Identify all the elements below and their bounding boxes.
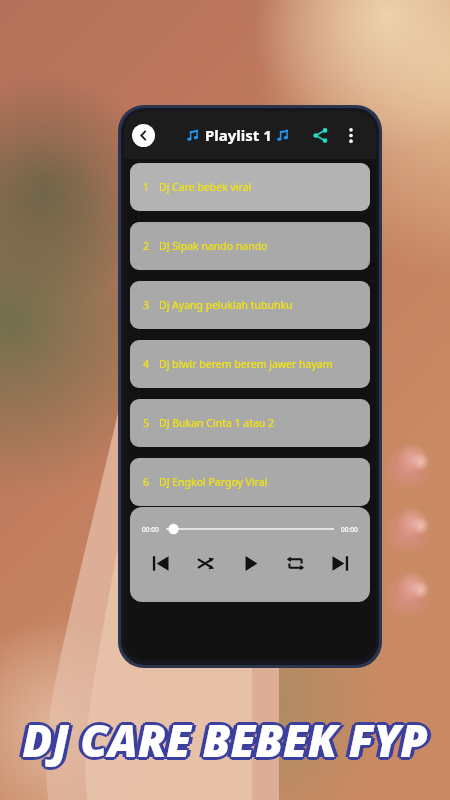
staticText: DJ CARE BEBEK FYP (26, 710, 432, 770)
button[interactable]: Shuffle (189, 547, 221, 579)
staticText: 5 (143, 416, 150, 430)
staticText: DJ CARE BEBEK FYP (19, 710, 425, 770)
staticText: 2 (143, 239, 150, 253)
button[interactable]: Play (234, 547, 266, 579)
staticText: 00:00 (142, 525, 159, 534)
staticText: 6 (143, 475, 150, 489)
button[interactable]: 4 (130, 340, 370, 388)
button[interactable]: Seek bar (166, 523, 334, 535)
staticText: 4 (143, 357, 150, 371)
button[interactable]: 5 (130, 399, 370, 447)
staticText: 3 (143, 298, 150, 312)
button[interactable]: Back (132, 124, 155, 147)
staticText: DJ CARE BEBEK FYP (22, 713, 428, 773)
staticText: Playlist 1 (205, 125, 272, 145)
staticText: DJ CARE BEBEK FYP (20, 712, 426, 772)
staticText: DJ CARE BEBEK FYP (22, 707, 428, 767)
staticText: Dj biwir berem berem jawer hayam (159, 357, 333, 371)
button[interactable]: 3 (130, 281, 370, 329)
staticText: 1 (143, 180, 150, 194)
button[interactable]: Share (306, 121, 334, 149)
staticText: Dj Care bebek viral (159, 180, 252, 194)
button[interactable]: 2 (130, 222, 370, 270)
staticText: DJ CARE BEBEK FYP (25, 710, 431, 770)
staticText: 00:00 (341, 525, 358, 534)
button[interactable]: 6 (130, 458, 370, 506)
staticText: DJ Sipak nando nando (159, 239, 268, 253)
button[interactable]: Previous (144, 547, 176, 579)
button[interactable]: More options (338, 122, 364, 148)
staticText: DJ Bukan Cinta 1 atau 2 (159, 416, 275, 430)
staticText: DJ CARE BEBEK FYP (18, 710, 424, 770)
staticText: DJ Engkol Pargoy Viral (159, 475, 268, 489)
button[interactable]: 1 (130, 163, 370, 211)
staticText: DJ CARE BEBEK FYP (24, 712, 430, 772)
staticText: DJ CARE BEBEK FYP (24, 708, 430, 768)
button[interactable]: Repeat (279, 547, 311, 579)
button[interactable]: Next (324, 547, 356, 579)
staticText: DJ CARE BEBEK FYP (22, 710, 428, 770)
staticText: Dj Ayang peluklah tubuhku (159, 298, 293, 312)
staticText: DJ CARE BEBEK FYP (20, 708, 426, 768)
